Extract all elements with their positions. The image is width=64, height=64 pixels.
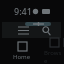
button[interactable]: Menu <box>12 22 34 38</box>
button[interactable]: Add <box>25 22 51 26</box>
button[interactable]: Home <box>0 38 44 64</box>
staticText: 9:41 <box>14 5 32 17</box>
staticText: Browse <box>44 49 64 64</box>
staticText: Home <box>13 53 31 61</box>
button[interactable]: Search <box>42 22 51 38</box>
button[interactable]: Browse <box>44 38 64 64</box>
